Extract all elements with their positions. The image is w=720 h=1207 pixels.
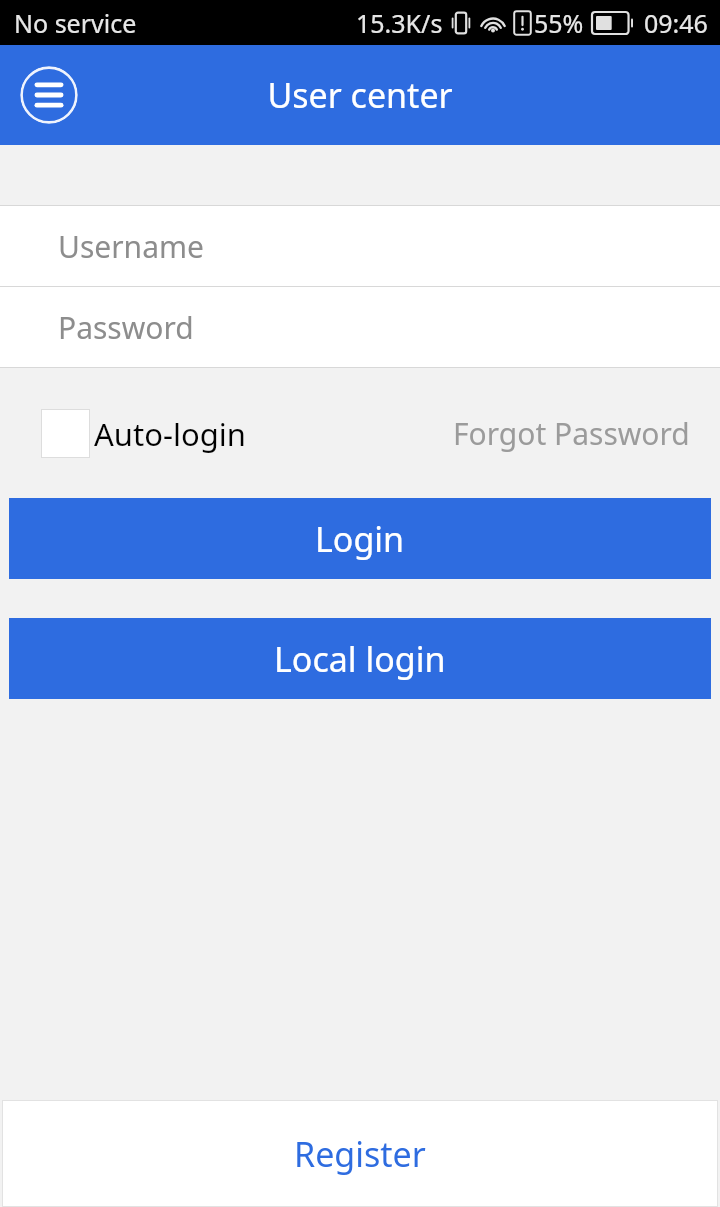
button[interactable]: Auto-login <box>41 409 246 458</box>
staticText: No service <box>14 6 137 40</box>
staticText: 15.3K/s <box>356 6 443 40</box>
button[interactable]: Register <box>2 1100 718 1207</box>
staticText: Username <box>58 226 204 267</box>
button[interactable]: Login <box>9 498 711 579</box>
button[interactable]: Username <box>0 206 720 286</box>
staticText: 55% <box>534 6 584 40</box>
staticText: 09:46 <box>644 6 708 40</box>
button[interactable]: Password <box>0 287 720 367</box>
staticText: Auto-login <box>94 413 246 455</box>
button[interactable]: Local login <box>9 618 711 699</box>
button[interactable]: Forgot Password <box>423 399 720 468</box>
staticText: Forgot Password <box>453 413 690 454</box>
staticText: Local login <box>274 636 446 682</box>
staticText: Password <box>58 307 194 348</box>
staticText: Register <box>294 1131 426 1177</box>
button[interactable]: Open navigation menu <box>20 66 78 124</box>
staticText: Login <box>315 516 405 562</box>
staticText: User center <box>267 72 453 118</box>
